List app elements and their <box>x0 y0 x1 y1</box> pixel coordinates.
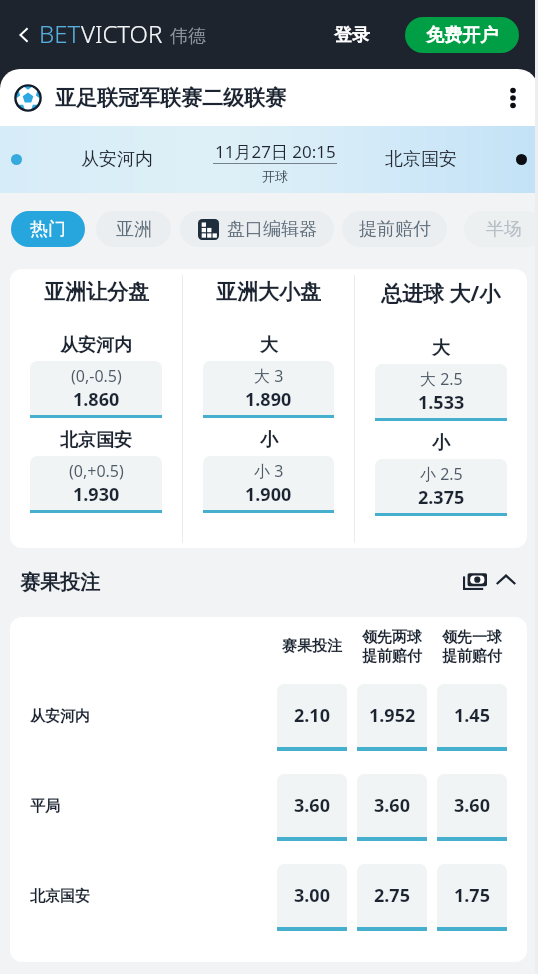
button[interactable]: 大 3 <box>203 361 334 418</box>
staticText: 1.900 <box>245 482 292 507</box>
staticText: 免费开户 <box>426 24 498 47</box>
staticText: 11月27日 20:15 <box>215 140 336 163</box>
button[interactable]: 1.45 <box>437 684 507 751</box>
button[interactable]: 2.75 <box>357 864 427 931</box>
staticText: 亚足联冠军联赛二级联赛 <box>55 85 286 111</box>
staticText: 大 <box>432 337 450 360</box>
button[interactable]: 半场 <box>464 211 538 247</box>
staticText: 3.00 <box>294 883 330 908</box>
staticText: 大 3 <box>254 365 284 387</box>
button[interactable]: Back <box>8 19 39 50</box>
staticText: 赛果投注 <box>282 637 342 656</box>
staticText: 小 <box>260 429 278 452</box>
staticText: 登录 <box>334 24 370 47</box>
staticText: 3.60 <box>374 793 410 818</box>
button[interactable]: Cash out <box>458 567 491 600</box>
staticText: 平局 <box>30 797 60 816</box>
staticText: 1.930 <box>73 482 120 507</box>
staticText: 1.952 <box>369 703 416 728</box>
staticText: 提前赔付 <box>362 647 422 666</box>
staticText: 北京国安 <box>60 429 132 452</box>
button[interactable]: (0,+0.5) <box>30 456 162 513</box>
staticText: 小 3 <box>254 460 284 482</box>
staticText: 2.375 <box>418 485 465 510</box>
staticText: (0,-0.5) <box>71 365 122 387</box>
staticText: 3.60 <box>294 793 330 818</box>
staticText: 北京国安 <box>30 887 90 906</box>
button[interactable]: 登录 <box>326 18 378 53</box>
staticText: 1.75 <box>454 883 490 908</box>
button[interactable]: 3.60 <box>437 774 507 841</box>
button[interactable]: More options <box>496 81 530 115</box>
staticText: 亚洲让分盘 <box>44 279 149 305</box>
button[interactable]: 3.00 <box>277 864 347 931</box>
staticText: 从安河内 <box>60 334 132 357</box>
staticText: 伟德 <box>170 25 206 48</box>
staticText: 小 <box>432 432 450 455</box>
staticText: 亚洲大小盘 <box>216 279 321 305</box>
staticText: 1.890 <box>245 387 292 412</box>
staticText: 半场 <box>486 218 522 241</box>
staticText: 亚洲 <box>116 218 152 241</box>
staticText: 赛果投注 <box>20 570 100 595</box>
staticText: 提前赔付 <box>359 218 431 241</box>
staticText: 热门 <box>30 218 66 241</box>
staticText: 2.75 <box>374 883 410 908</box>
staticText: 1.860 <box>73 387 120 412</box>
staticText: 开球 <box>262 168 288 184</box>
button[interactable]: 提前赔付 <box>342 211 447 247</box>
staticText: 北京国安 <box>385 148 457 171</box>
button[interactable]: Collapse <box>489 563 522 596</box>
button[interactable]: 2.10 <box>277 684 347 751</box>
button[interactable]: (0,-0.5) <box>30 361 162 418</box>
staticText: (0,+0.5) <box>69 460 124 482</box>
button[interactable]: 热门 <box>11 211 85 247</box>
button[interactable]: 1.75 <box>437 864 507 931</box>
staticText: VICTOR <box>81 17 163 50</box>
button[interactable]: 免费开户 <box>405 17 519 53</box>
staticText: 1.533 <box>418 390 465 415</box>
button[interactable]: 3.60 <box>277 774 347 841</box>
staticText: 1.45 <box>454 703 490 728</box>
staticText: 3.60 <box>454 793 490 818</box>
staticText: 从安河内 <box>30 707 90 726</box>
button[interactable]: 小 3 <box>203 456 334 513</box>
staticText: 大 <box>260 334 278 357</box>
staticText: 盘口编辑器 <box>227 218 317 241</box>
button[interactable]: 1.952 <box>357 684 427 751</box>
staticText: 领先一球 <box>442 628 502 647</box>
button[interactable]: 3.60 <box>357 774 427 841</box>
staticText: 小 2.5 <box>420 463 463 485</box>
button[interactable]: 小 2.5 <box>375 459 507 516</box>
button[interactable]: 大 2.5 <box>375 364 507 421</box>
button[interactable]: 亚足联冠军联赛二级联赛 <box>0 69 538 126</box>
staticText: 从安河内 <box>81 148 153 171</box>
staticText: BET <box>39 17 81 50</box>
button[interactable]: 亚洲 <box>96 211 171 247</box>
button[interactable]: 从安河内 <box>0 126 538 193</box>
staticText: 领先两球 <box>362 628 422 647</box>
button[interactable]: 盘口编辑器 <box>180 211 334 247</box>
staticText: 大 2.5 <box>420 368 463 390</box>
staticText: 2.10 <box>294 703 330 728</box>
staticText: 总进球 大/小 <box>381 279 501 308</box>
staticText: 提前赔付 <box>442 647 502 666</box>
